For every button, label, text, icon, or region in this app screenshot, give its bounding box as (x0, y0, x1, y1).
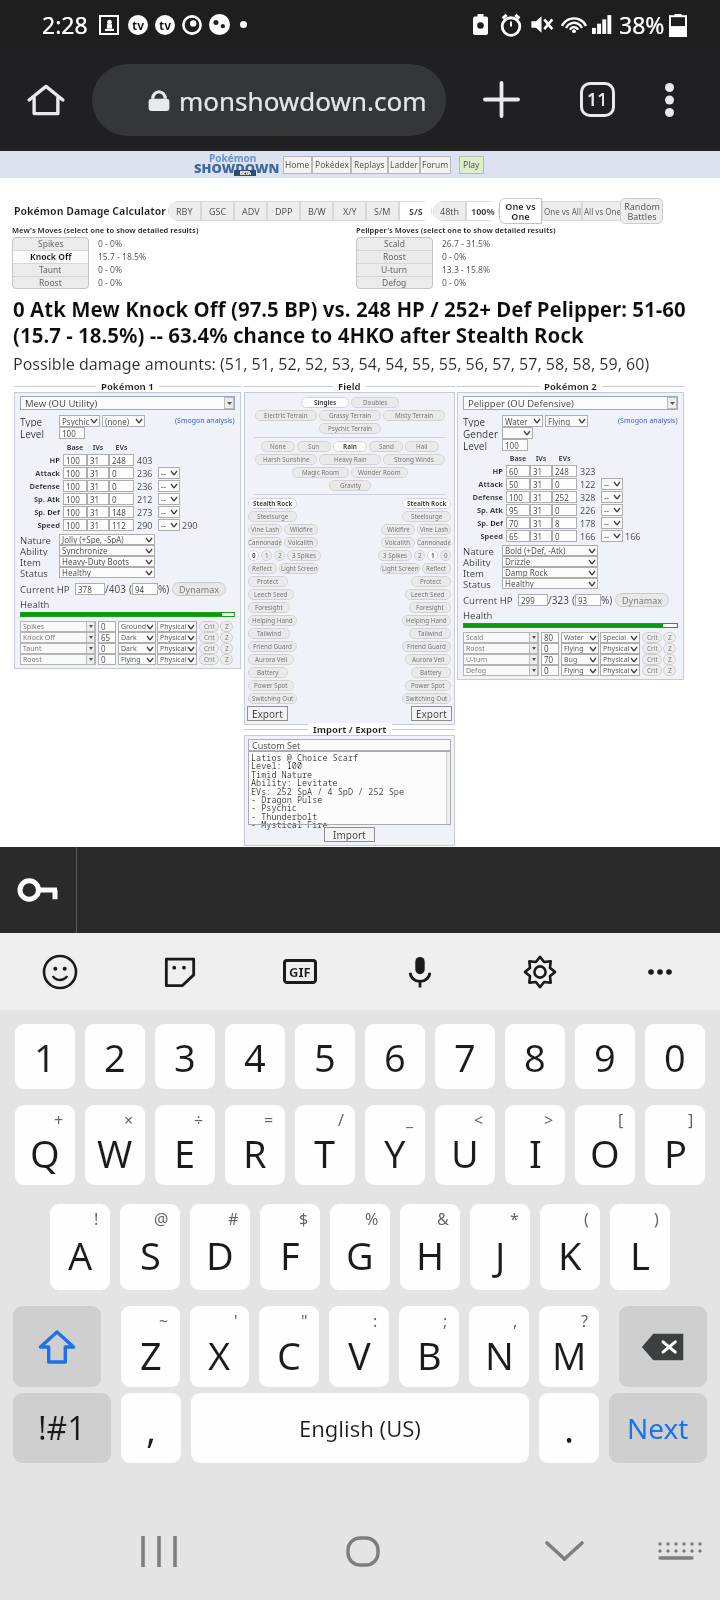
button[interactable]: Crit (642, 632, 662, 643)
button[interactable]: None (261, 441, 295, 452)
button[interactable]: 7 (435, 1024, 495, 1089)
button[interactable]: Tabs (557, 48, 637, 151)
button[interactable]: _ (365, 1105, 425, 1185)
button[interactable]: Rain (333, 441, 367, 452)
button[interactable]: Water (561, 632, 599, 643)
button[interactable]: 3 Spikes (287, 550, 321, 561)
button[interactable]: Protect (411, 576, 451, 587)
button[interactable]: Physical (157, 632, 197, 643)
button[interactable]: ~ (121, 1306, 180, 1387)
button[interactable]: 1 (427, 550, 438, 561)
button[interactable]: Roost (12, 276, 89, 289)
button[interactable]: Crit (642, 665, 662, 676)
button[interactable]: ; (399, 1306, 459, 1387)
button[interactable]: Power Spot (248, 680, 294, 691)
button[interactable]: Battery (411, 667, 451, 678)
button[interactable]: -- (601, 504, 623, 516)
button[interactable]: 3 Spikes (378, 550, 412, 561)
button[interactable]: Knock Off (12, 250, 89, 263)
button[interactable]: Vine Lash (248, 524, 282, 535)
button[interactable]: monshowdown.com (92, 64, 446, 136)
button[interactable]: 2 (274, 550, 285, 561)
button[interactable]: Flying (561, 665, 599, 676)
button[interactable]: Reflect (422, 563, 451, 574)
button[interactable]: Crit (199, 654, 219, 665)
button[interactable]: Battery (248, 667, 288, 678)
button[interactable]: Wildfire (381, 524, 415, 535)
button[interactable]: Hide keyboard (530, 1517, 598, 1585)
button[interactable]: Play (459, 156, 484, 174)
button[interactable]: Protect (248, 576, 288, 587)
button[interactable]: Aurora Veil (248, 654, 294, 665)
button[interactable]: Psychic (59, 415, 100, 427)
button[interactable]: GSC (201, 201, 234, 221)
button[interactable]: & (400, 1204, 460, 1290)
button[interactable]: Dark (118, 632, 156, 643)
button[interactable]: Crit (642, 643, 662, 654)
button[interactable]: Settings (480, 933, 600, 1010)
button[interactable]: 1 (15, 1024, 75, 1089)
button[interactable]: Stickers (120, 933, 240, 1010)
button[interactable]: 8 (505, 1024, 565, 1089)
button[interactable]: Physical (157, 621, 197, 632)
button[interactable]: Steelsurge (402, 511, 451, 522)
button[interactable]: 100% (466, 201, 499, 221)
button[interactable]: 5 (295, 1024, 355, 1089)
button[interactable]: Export (411, 706, 452, 721)
button[interactable]: -- (158, 480, 180, 492)
button[interactable] (502, 427, 533, 439)
button[interactable]: -- (601, 530, 623, 542)
button[interactable]: 2 (85, 1024, 145, 1089)
button[interactable]: Tailwind (248, 628, 290, 639)
button[interactable]: Flying (545, 415, 588, 427)
button[interactable]: Ladder (388, 156, 420, 174)
button[interactable]: RBY (168, 201, 201, 221)
button[interactable]: Volcalith (381, 537, 415, 548)
button[interactable]: Crit (199, 643, 219, 654)
button[interactable]: Aurora Veil (405, 654, 451, 665)
button[interactable]: Flying (561, 643, 599, 654)
button[interactable]: + (15, 1105, 75, 1185)
button[interactable]: Scald (463, 632, 539, 643)
button[interactable]: One vs All (542, 201, 582, 221)
button[interactable]: Dynamax (615, 593, 669, 607)
button[interactable]: Friend Guard (248, 641, 297, 652)
button[interactable]: More options (637, 48, 720, 151)
button[interactable]: Taunt (20, 643, 96, 654)
button[interactable]: Volcalith (284, 537, 318, 548)
button[interactable]: Sand (369, 441, 403, 452)
button[interactable]: Friend Guard (402, 641, 451, 652)
button[interactable]: @ (120, 1204, 180, 1290)
button[interactable]: > (505, 1105, 565, 1185)
button[interactable]: Vine Lash (417, 524, 451, 535)
button[interactable]: Healthy (502, 578, 598, 589)
button[interactable]: Physical (600, 665, 640, 676)
button[interactable]: ( (540, 1204, 600, 1290)
button[interactable]: Helping Hand (248, 615, 297, 626)
button[interactable]: 2 (414, 550, 425, 561)
button[interactable]: Physical (157, 643, 197, 654)
button[interactable]: -- (158, 493, 180, 505)
button[interactable]: 0 (645, 1024, 705, 1089)
button[interactable]: Home (0, 48, 92, 151)
button[interactable]: Sun (297, 441, 331, 452)
button[interactable]: Physical (600, 654, 640, 665)
button[interactable]: GIF (240, 959, 360, 984)
button[interactable]: Z (220, 643, 233, 654)
button[interactable]: Heavy-Duty Boots (59, 556, 155, 567)
button[interactable]: Z (663, 665, 676, 676)
button[interactable]: Passwords (0, 847, 76, 933)
button[interactable]: Foresight (248, 602, 290, 613)
button[interactable]: U-turn (356, 263, 433, 276)
button[interactable]: Water (502, 415, 543, 427)
button[interactable]: Wonder Room (351, 467, 408, 478)
button[interactable]: U-turn (463, 654, 539, 665)
button[interactable]: Drizzle (502, 556, 598, 567)
button[interactable]: < (435, 1105, 495, 1185)
button[interactable]: Import (324, 827, 375, 842)
button[interactable]: Magic Room (292, 467, 349, 478)
button[interactable]: Light Screen (279, 563, 319, 574)
button[interactable]: Taunt (12, 263, 89, 276)
button[interactable]: Replays (351, 156, 388, 174)
button[interactable]: Export (247, 706, 288, 721)
